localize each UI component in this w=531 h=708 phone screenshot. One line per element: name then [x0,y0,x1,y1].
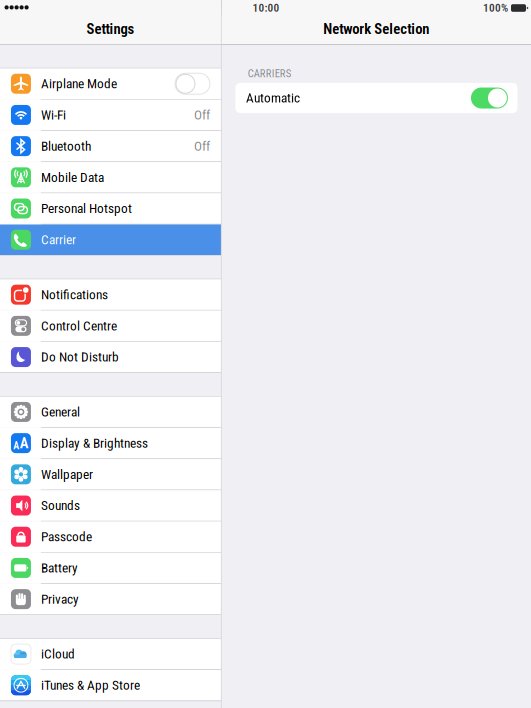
staticText: 100% [483,1,508,15]
button[interactable]: Bluetooth [0,131,221,161]
staticText: Settings [86,20,134,38]
staticText: Do Not Disturb [41,349,119,365]
staticText: iCloud [41,646,75,662]
staticText: Carrier [41,232,76,247]
staticText: A [20,435,29,452]
staticText: Privacy [41,591,79,607]
button[interactable]: A [0,428,221,458]
staticText: Battery [41,560,78,576]
staticText: Automatic [246,90,300,106]
staticText: Wi-Fi [41,107,66,123]
button[interactable]: Privacy [0,584,221,614]
staticText: CARRIERS [248,67,292,80]
staticText: Display & Brightness [41,435,148,451]
button[interactable]: Airplane Mode, off [175,73,210,94]
staticText: Notifications [41,287,108,302]
button[interactable]: General [0,397,221,427]
staticText: Control Centre [41,318,117,334]
staticText: Bluetooth [41,138,91,154]
staticText: Sounds [41,498,80,513]
staticText: Airplane Mode [41,76,117,91]
button[interactable]: Wi-Fi [0,100,221,130]
button[interactable]: Mobile Data [0,162,221,193]
staticText: Passcode [41,529,92,544]
button[interactable]: Notifications [0,279,221,310]
staticText: General [41,404,80,420]
staticText: Off [194,107,210,123]
staticText: Wallpaper [41,466,93,482]
staticText: Network Selection [323,20,429,38]
staticText: iTunes & App Store [41,677,140,693]
button[interactable]: Passcode [0,521,221,552]
button[interactable]: Do Not Disturb [0,342,221,372]
button[interactable]: iCloud [0,639,221,669]
button[interactable]: Sounds [0,490,221,521]
button[interactable]: iTunes & App Store [0,670,221,700]
button[interactable]: Airplane Mode [0,68,221,99]
button[interactable]: Control Centre [0,311,221,341]
button[interactable]: Battery [0,553,221,583]
staticText: 10:00 [252,1,279,15]
staticText: Off [194,138,210,154]
staticText: Mobile Data [41,169,104,185]
staticText: A [13,440,19,452]
button[interactable]: Carrier [0,224,221,255]
staticText: Personal Hotspot [41,201,132,216]
button[interactable]: Automatic, on [471,87,508,108]
button[interactable]: Personal Hotspot [0,193,221,224]
button[interactable]: Wallpaper [0,459,221,490]
